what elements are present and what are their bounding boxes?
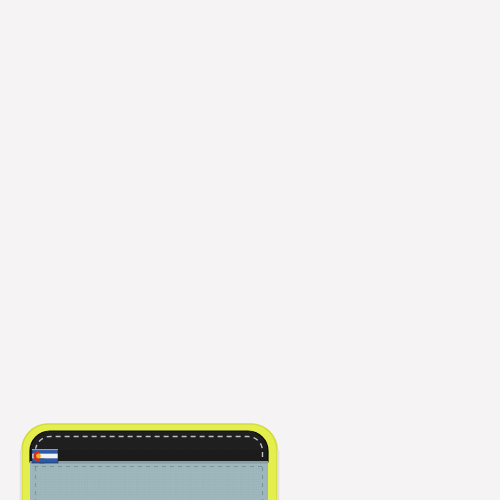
button[interactable]: Wallet <box>0 0 500 500</box>
